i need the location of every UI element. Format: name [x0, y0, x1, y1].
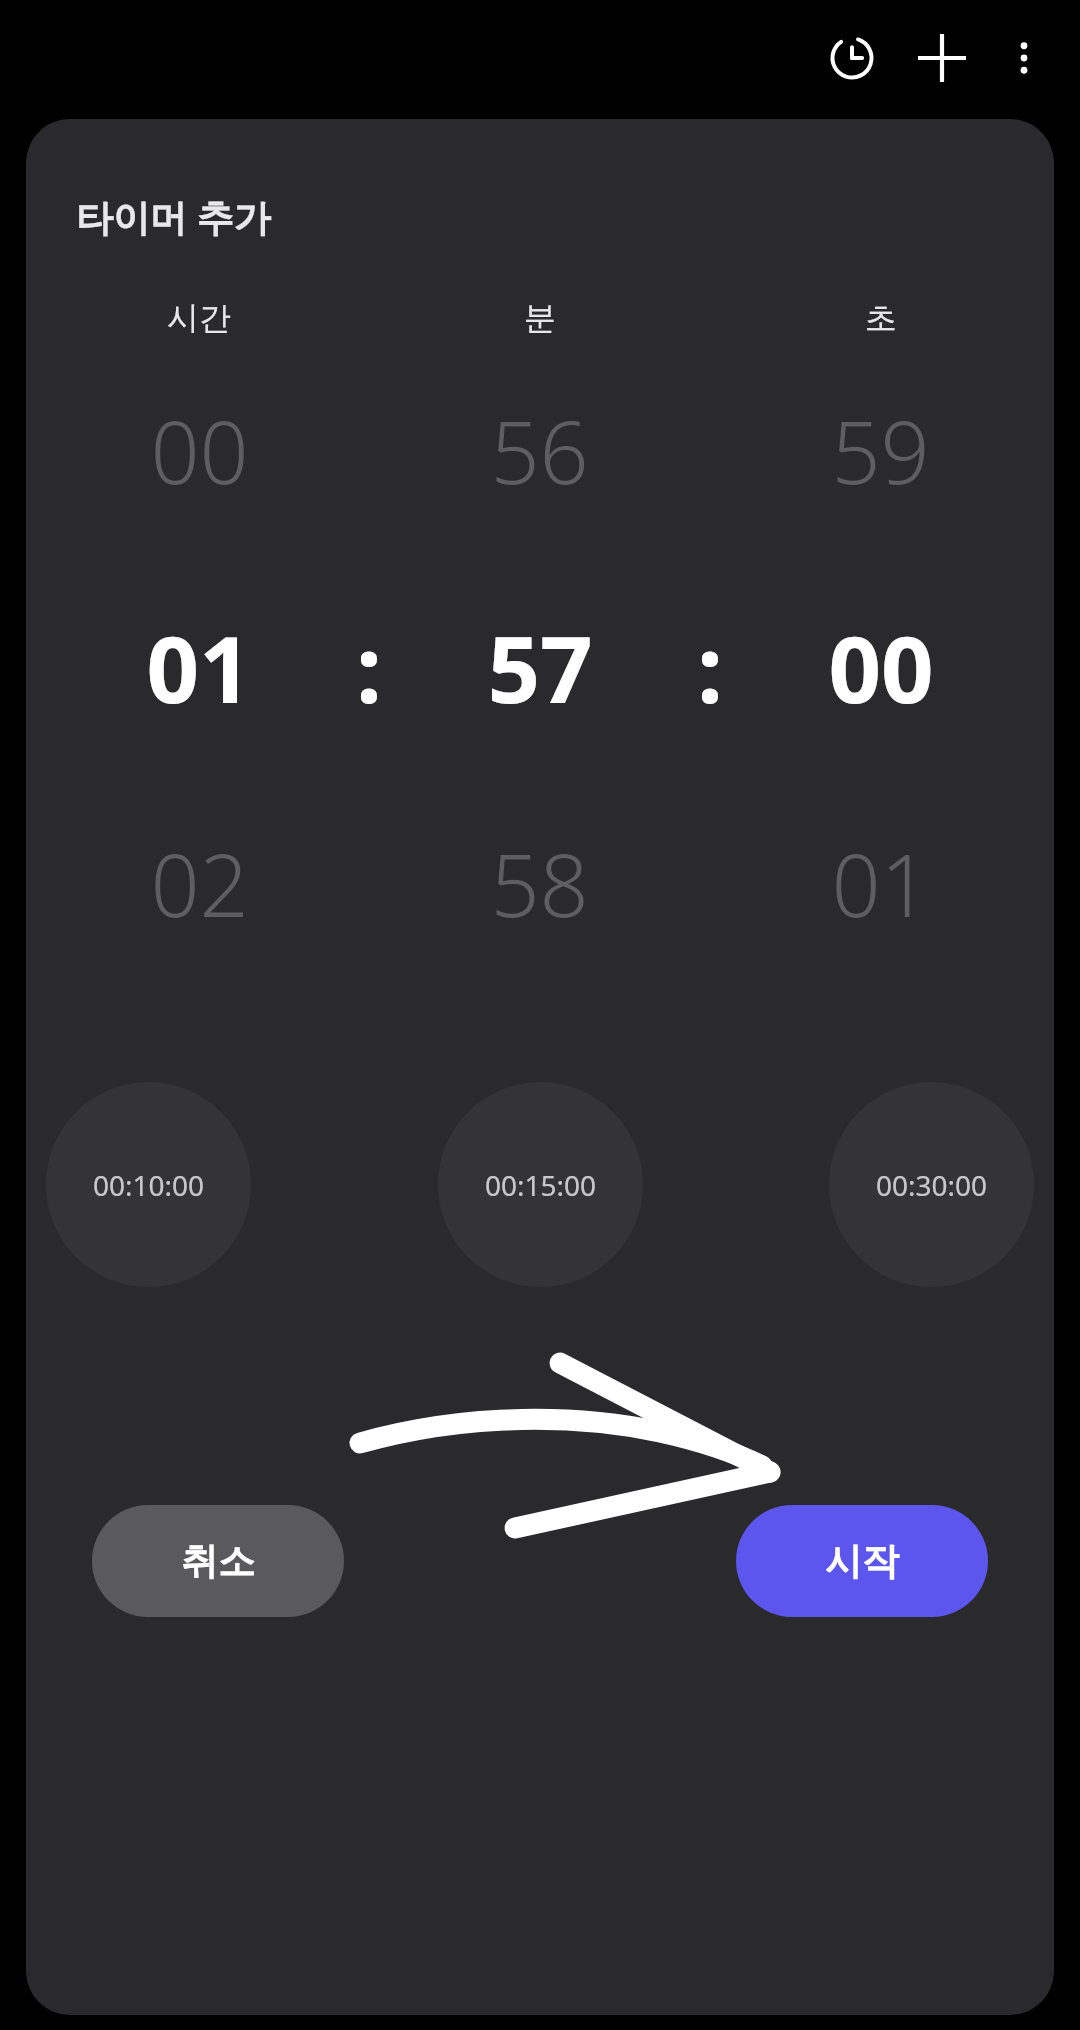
staticText: 57: [487, 605, 593, 730]
button[interactable]: Recent timers: [812, 18, 892, 98]
staticText: 분: [524, 298, 556, 338]
staticText: 01: [831, 825, 930, 942]
staticText: 00: [150, 392, 249, 509]
staticText: 58: [490, 825, 589, 942]
staticText: 취소: [181, 1538, 255, 1585]
button[interactable]: Add timer: [902, 18, 982, 98]
button[interactable]: 취소: [92, 1505, 344, 1617]
staticText: 00:15:00: [485, 1166, 597, 1204]
button[interactable]: 00:15:00: [438, 1082, 643, 1287]
staticText: 00:10:00: [93, 1166, 205, 1204]
staticText: 00: [828, 605, 934, 730]
staticText: 초: [865, 298, 897, 338]
staticText: 56: [490, 392, 589, 509]
staticText: 01: [146, 605, 252, 730]
button[interactable]: 00:10:00: [46, 1082, 251, 1287]
staticText: :: [356, 605, 382, 730]
staticText: 타이머 추가: [76, 191, 271, 242]
staticText: 시간: [167, 298, 231, 338]
staticText: 시작: [825, 1538, 899, 1585]
button[interactable]: 00:30:00: [829, 1082, 1034, 1287]
button[interactable]: 시작: [736, 1505, 988, 1617]
button[interactable]: More options: [988, 22, 1060, 94]
staticText: :: [697, 605, 723, 730]
staticText: 02: [150, 825, 249, 942]
staticText: 59: [831, 392, 930, 509]
staticText: 00:30:00: [876, 1166, 988, 1204]
